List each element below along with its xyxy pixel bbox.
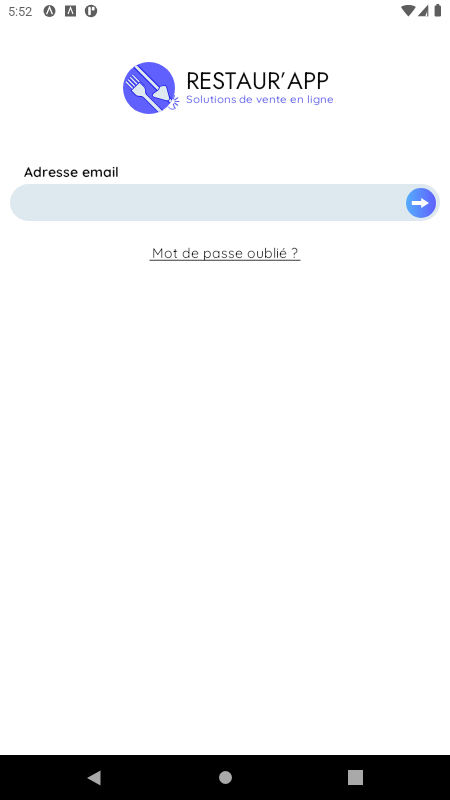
button[interactable]: Home xyxy=(201,755,249,800)
button[interactable] xyxy=(145,243,305,265)
button[interactable]: Adresse email xyxy=(10,184,440,221)
button[interactable]: Recent apps xyxy=(331,755,379,800)
button[interactable]: Back xyxy=(70,755,118,800)
button[interactable]: Valider xyxy=(406,188,436,218)
